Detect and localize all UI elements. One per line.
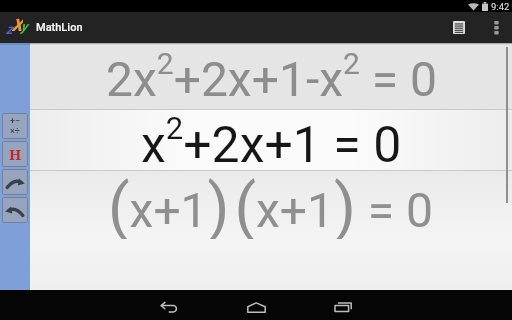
staticText: X [12, 15, 23, 34]
staticText: x2+2x+1 = 0 [141, 110, 402, 170]
button[interactable]: +− ×÷ [2, 113, 28, 139]
button[interactable] [2, 197, 28, 223]
staticText: 9:42 [491, 1, 510, 12]
staticText: z [6, 21, 13, 37]
staticText: H [9, 144, 22, 164]
button[interactable] [448, 12, 470, 43]
button[interactable]: H [2, 141, 28, 167]
button[interactable] [2, 169, 28, 195]
button[interactable] [484, 12, 508, 43]
staticText: MathLion [36, 21, 83, 34]
staticText: (x+1) (x+1) = 0 [108, 171, 434, 239]
staticText: +− ×÷ [10, 116, 21, 136]
button[interactable] [149, 290, 189, 320]
button[interactable] [236, 290, 276, 320]
button[interactable]: x2+2x+1 = 0 [30, 110, 512, 170]
button[interactable] [323, 290, 363, 320]
button[interactable]: 2x2+2x+1-x2 = 0 [30, 45, 512, 109]
button[interactable]: (x+1) (x+1) = 0 [30, 171, 512, 239]
staticText: y [21, 19, 28, 34]
staticText: 2x2+2x+1-x2 = 0 [106, 46, 437, 108]
